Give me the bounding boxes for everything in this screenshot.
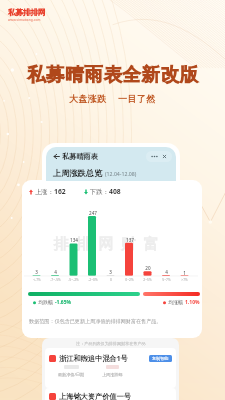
staticText: 2~5%	[143, 277, 152, 281]
staticText: -1.65%	[55, 299, 72, 306]
staticText: -7~-5%	[50, 277, 61, 281]
staticText: 0~2%	[125, 277, 134, 281]
button[interactable]: Menu and close	[146, 151, 172, 162]
staticText: 137	[126, 237, 134, 243]
staticText: 5~7%	[162, 277, 171, 281]
staticText: 上涨：	[35, 188, 54, 196]
staticText: >7%	[181, 277, 188, 281]
staticText: (12.04-12.08)	[105, 170, 137, 177]
staticText: 1	[183, 270, 186, 276]
staticText: 注：产品列表仅为排排网财富在售产品	[76, 341, 146, 346]
staticText: 浙江和煦追中混合1号	[59, 353, 128, 363]
button[interactable]: Back	[52, 152, 61, 161]
staticText: 1.10%	[185, 299, 200, 306]
staticText: 上海铭大资产价值一号	[59, 392, 131, 400]
staticText: 大盘涨跌	[69, 93, 107, 104]
staticText: 私募排排网	[8, 8, 46, 18]
staticText: 134	[70, 237, 78, 243]
staticText: 4	[165, 269, 168, 275]
staticText: 数据范围：仅包含已更新上周净值的排排网财富在售产品。	[29, 318, 162, 324]
staticText: www.simuwang.com	[8, 18, 41, 22]
staticText: 均跌幅	[38, 299, 53, 305]
staticText: <-7%	[33, 277, 41, 281]
staticText: 408	[109, 187, 121, 196]
staticText: 排排网财富	[50, 235, 162, 254]
staticText: 下跌：	[90, 188, 109, 196]
button[interactable]: 浙江和煦追中混合1号	[45, 348, 176, 388]
staticText: 私募晴雨表	[62, 152, 98, 161]
staticText: 0	[110, 277, 112, 281]
staticText: 上周涨跌幅	[102, 372, 123, 377]
staticText: 复制智能	[152, 356, 169, 361]
staticText: 4	[54, 269, 57, 275]
staticText: 162	[54, 187, 66, 196]
staticText: 20	[145, 265, 151, 271]
staticText: 最新净值/日期	[58, 372, 85, 378]
staticText: 一目了然	[118, 93, 156, 104]
staticText: 私募晴雨表全新改版	[27, 63, 199, 86]
staticText: 上周涨跌总览	[53, 168, 103, 178]
staticText: 3	[109, 269, 112, 275]
staticText: 均涨幅	[168, 299, 183, 305]
staticText: -2~0%	[88, 277, 98, 281]
staticText: 247	[89, 210, 97, 216]
staticText: 3	[35, 269, 38, 275]
staticText: -5~-2%	[68, 277, 79, 281]
